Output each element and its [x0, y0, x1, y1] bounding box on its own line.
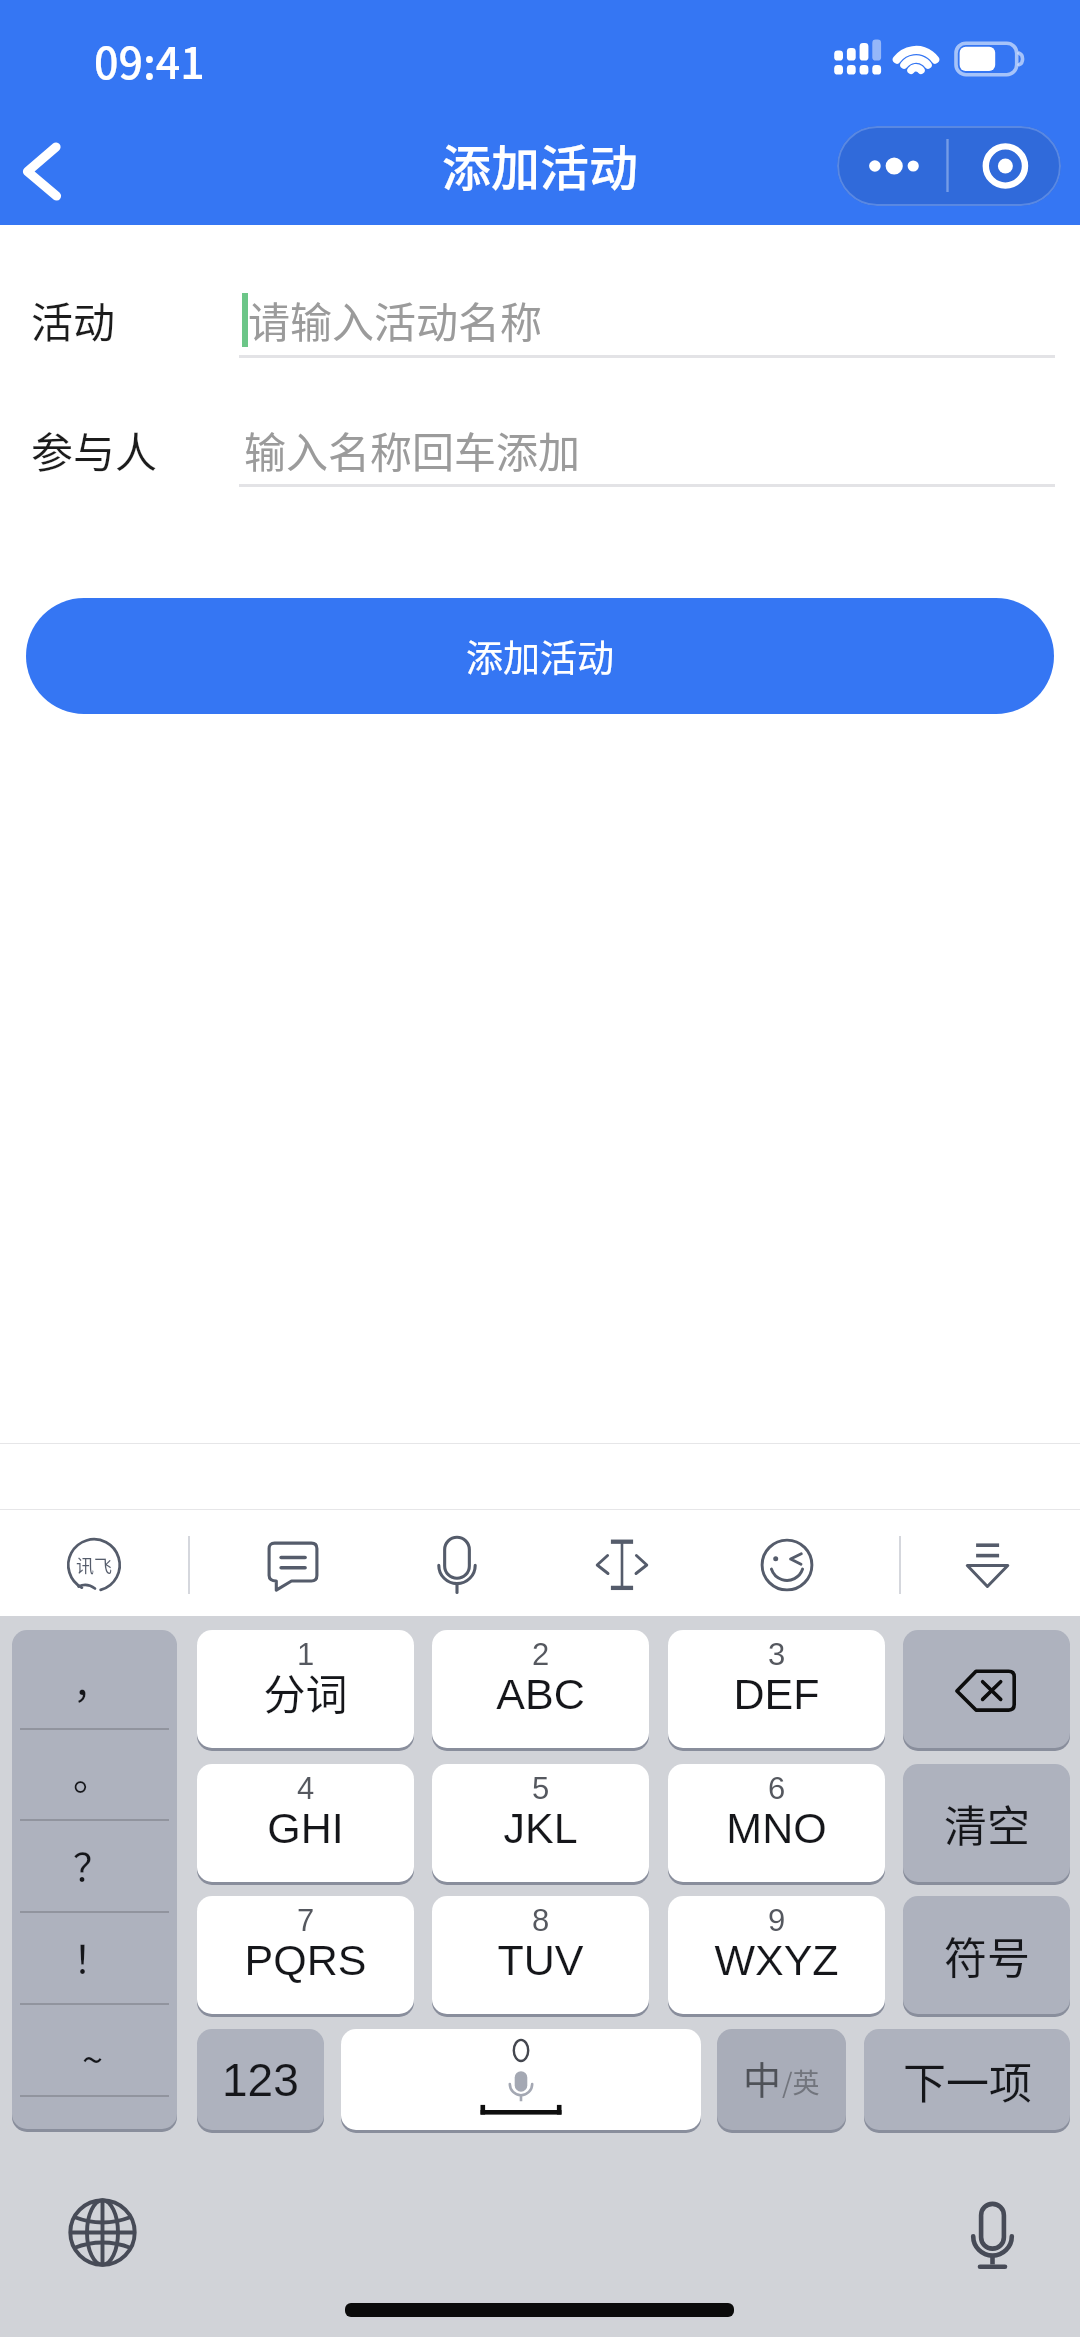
staticText: 5	[432, 1771, 649, 1806]
button[interactable]: 添加活动	[26, 598, 1054, 714]
button[interactable]: Switch language	[69, 2199, 136, 2266]
staticText: 输入名称回车添加	[244, 419, 581, 480]
staticText: PQRS	[197, 1936, 414, 1984]
button[interactable]: Input method	[42, 1513, 146, 1617]
staticText: 分词	[197, 1661, 414, 1722]
button[interactable]: ？	[12, 1819, 177, 1911]
button[interactable]: 2	[432, 1630, 649, 1748]
staticText: 清空	[944, 1792, 1030, 1854]
button[interactable]: Chinese English toggle	[717, 2029, 846, 2130]
staticText: ，	[73, 1654, 112, 1709]
staticText: 09:41	[94, 29, 205, 91]
button[interactable]: 。	[12, 1728, 177, 1820]
staticText: 123	[222, 2054, 299, 2105]
button[interactable]: ！	[12, 1911, 177, 2003]
staticText: 讯飞	[76, 1552, 112, 1578]
staticText: GHI	[197, 1804, 414, 1852]
button[interactable]: Back	[0, 116, 105, 222]
button[interactable]: 3	[668, 1630, 885, 1748]
button[interactable]: Move cursor	[570, 1513, 674, 1617]
staticText: ？	[73, 1837, 112, 1892]
button[interactable]: 符号	[903, 1896, 1070, 2014]
staticText: 。	[73, 1746, 112, 1801]
button[interactable]: 9	[668, 1896, 885, 2014]
staticText: 7	[197, 1903, 414, 1938]
button[interactable]: Voice input	[405, 1513, 509, 1617]
button[interactable]: More menu	[837, 126, 1061, 206]
staticText: 3	[668, 1637, 885, 1672]
staticText: ~	[82, 2030, 104, 2085]
staticText: 1	[197, 1637, 414, 1672]
staticText: 请输入活动名称	[248, 289, 543, 350]
button[interactable]: 8	[432, 1896, 649, 2014]
staticText: 下一项	[903, 2049, 1032, 2111]
staticText: 参与人	[31, 419, 158, 480]
button[interactable]: Backspace	[903, 1630, 1070, 1748]
staticText: 4	[197, 1771, 414, 1806]
staticText: 中	[743, 2050, 782, 2105]
staticText: 9	[668, 1903, 885, 1938]
button[interactable]: Messages	[241, 1513, 345, 1617]
staticText: DEF	[668, 1670, 885, 1718]
staticText: 符号	[944, 1924, 1030, 1986]
button[interactable]: 123	[197, 2029, 324, 2130]
staticText: 8	[432, 1903, 649, 1938]
button[interactable]: 1	[197, 1630, 414, 1748]
button[interactable]: 6	[668, 1764, 885, 1882]
button[interactable]: 5	[432, 1764, 649, 1882]
staticText: TUV	[432, 1936, 649, 1984]
button[interactable]: 7	[197, 1896, 414, 2014]
staticText: 6	[668, 1771, 885, 1806]
button[interactable]: Emoji	[735, 1513, 839, 1617]
staticText: ！	[73, 1929, 112, 1984]
staticText: MNO	[668, 1804, 885, 1852]
button[interactable]: Voice input	[952, 2199, 1033, 2275]
staticText: /英	[782, 2062, 820, 2101]
button[interactable]: 下一项	[864, 2029, 1070, 2130]
staticText: 活动	[31, 289, 116, 350]
staticText: 2	[432, 1637, 649, 1672]
staticText: ABC	[432, 1670, 649, 1718]
button[interactable]: 清空	[903, 1764, 1070, 1882]
staticText: 添加活动	[466, 629, 614, 683]
staticText: JKL	[432, 1804, 649, 1852]
button[interactable]: ~	[12, 2003, 177, 2095]
button[interactable]: 4	[197, 1764, 414, 1882]
button[interactable]: Space	[341, 2029, 701, 2130]
button[interactable]: ，	[12, 1636, 177, 1728]
staticText: 添加活动	[0, 129, 1080, 200]
button[interactable]: Hide keyboard	[936, 1513, 1040, 1617]
staticText: WXYZ	[668, 1936, 885, 1984]
